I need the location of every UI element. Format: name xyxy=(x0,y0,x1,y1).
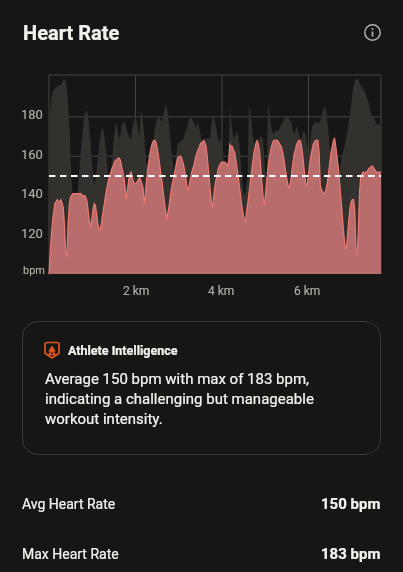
staticText: Athlete Intelligence xyxy=(68,343,178,358)
staticText: 160 xyxy=(21,147,43,162)
button[interactable]: Max Heart Rate xyxy=(0,529,403,572)
staticText: 180 xyxy=(21,107,43,122)
staticText: 140 xyxy=(21,186,43,201)
staticText: 120 xyxy=(21,226,43,241)
staticText: Heart Rate xyxy=(23,21,120,44)
button[interactable]: Athlete Intelligence xyxy=(22,321,381,455)
staticText: 150 bpm xyxy=(321,495,381,513)
staticText: Avg Heart Rate xyxy=(22,496,116,512)
staticText: 183 bpm xyxy=(321,545,381,563)
staticText: bpm xyxy=(23,264,45,277)
staticText: 6 km xyxy=(294,284,321,298)
staticText: Average 150 bpm with max of 183 bpm, ind… xyxy=(45,370,361,427)
staticText: 2 km xyxy=(123,284,150,298)
button[interactable]: Info xyxy=(355,15,389,49)
staticText: 4 km xyxy=(208,284,235,298)
staticText: Max Heart Rate xyxy=(22,546,119,562)
button[interactable]: Avg Heart Rate xyxy=(0,479,403,529)
